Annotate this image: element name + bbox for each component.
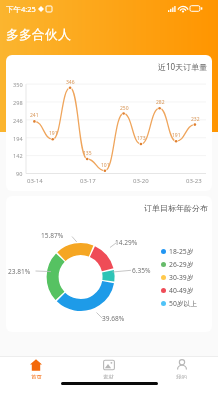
staticText: 26-29岁 [169,260,194,269]
button[interactable]: 30-39岁 [161,271,194,284]
staticText: 90 [16,170,23,178]
staticText: 14.29% [115,238,138,247]
staticText: 246 [13,117,23,125]
staticText: 194 [13,135,23,143]
staticText: 03-23 [186,177,202,185]
staticText: 多多合伙人 [6,26,71,42]
button[interactable]: 素材 [72,359,145,379]
staticText: 241 [30,112,39,119]
staticText: 250 [120,105,129,112]
button[interactable]: 18-25岁 [161,245,194,258]
staticText: 142 [13,152,23,160]
staticText: 282 [156,99,165,106]
staticText: 350 [13,81,23,89]
staticText: 232 [191,116,200,123]
button[interactable]: 50岁以上 [161,297,198,310]
button[interactable]: 我的 [145,359,218,379]
button[interactable]: 首页 [0,359,72,379]
staticText: 173 [137,135,146,142]
staticText: 03-14 [27,177,43,185]
staticText: 191 [49,130,58,137]
staticText: 18-25岁 [169,247,194,256]
staticText: 101 [101,162,110,169]
staticText: 39.68% [102,314,125,323]
staticText: 15.87% [41,231,64,240]
staticText: 346 [66,79,75,86]
staticText: 近10天订单量 [158,61,208,72]
staticText: 素材 [103,374,114,379]
button[interactable]: 26-29岁 [161,258,194,271]
staticText: 订单目标年龄分布 [144,203,208,213]
staticText: 首页 [31,374,42,379]
staticText: 135 [83,150,92,157]
staticText: 30-39岁 [169,273,194,282]
staticText: 6.35% [132,266,151,275]
staticText: 50岁以上 [169,299,198,308]
staticText: 03-20 [133,177,149,185]
button[interactable]: 40-49岁 [161,284,194,297]
staticText: 03-17 [80,177,96,185]
staticText: 298 [13,99,23,107]
staticText: 23.81% [8,267,31,276]
staticText: 40-49岁 [169,286,194,295]
staticText: 下午4:25 [6,4,36,14]
staticText: 我的 [176,374,187,379]
staticText: 191 [172,132,181,139]
